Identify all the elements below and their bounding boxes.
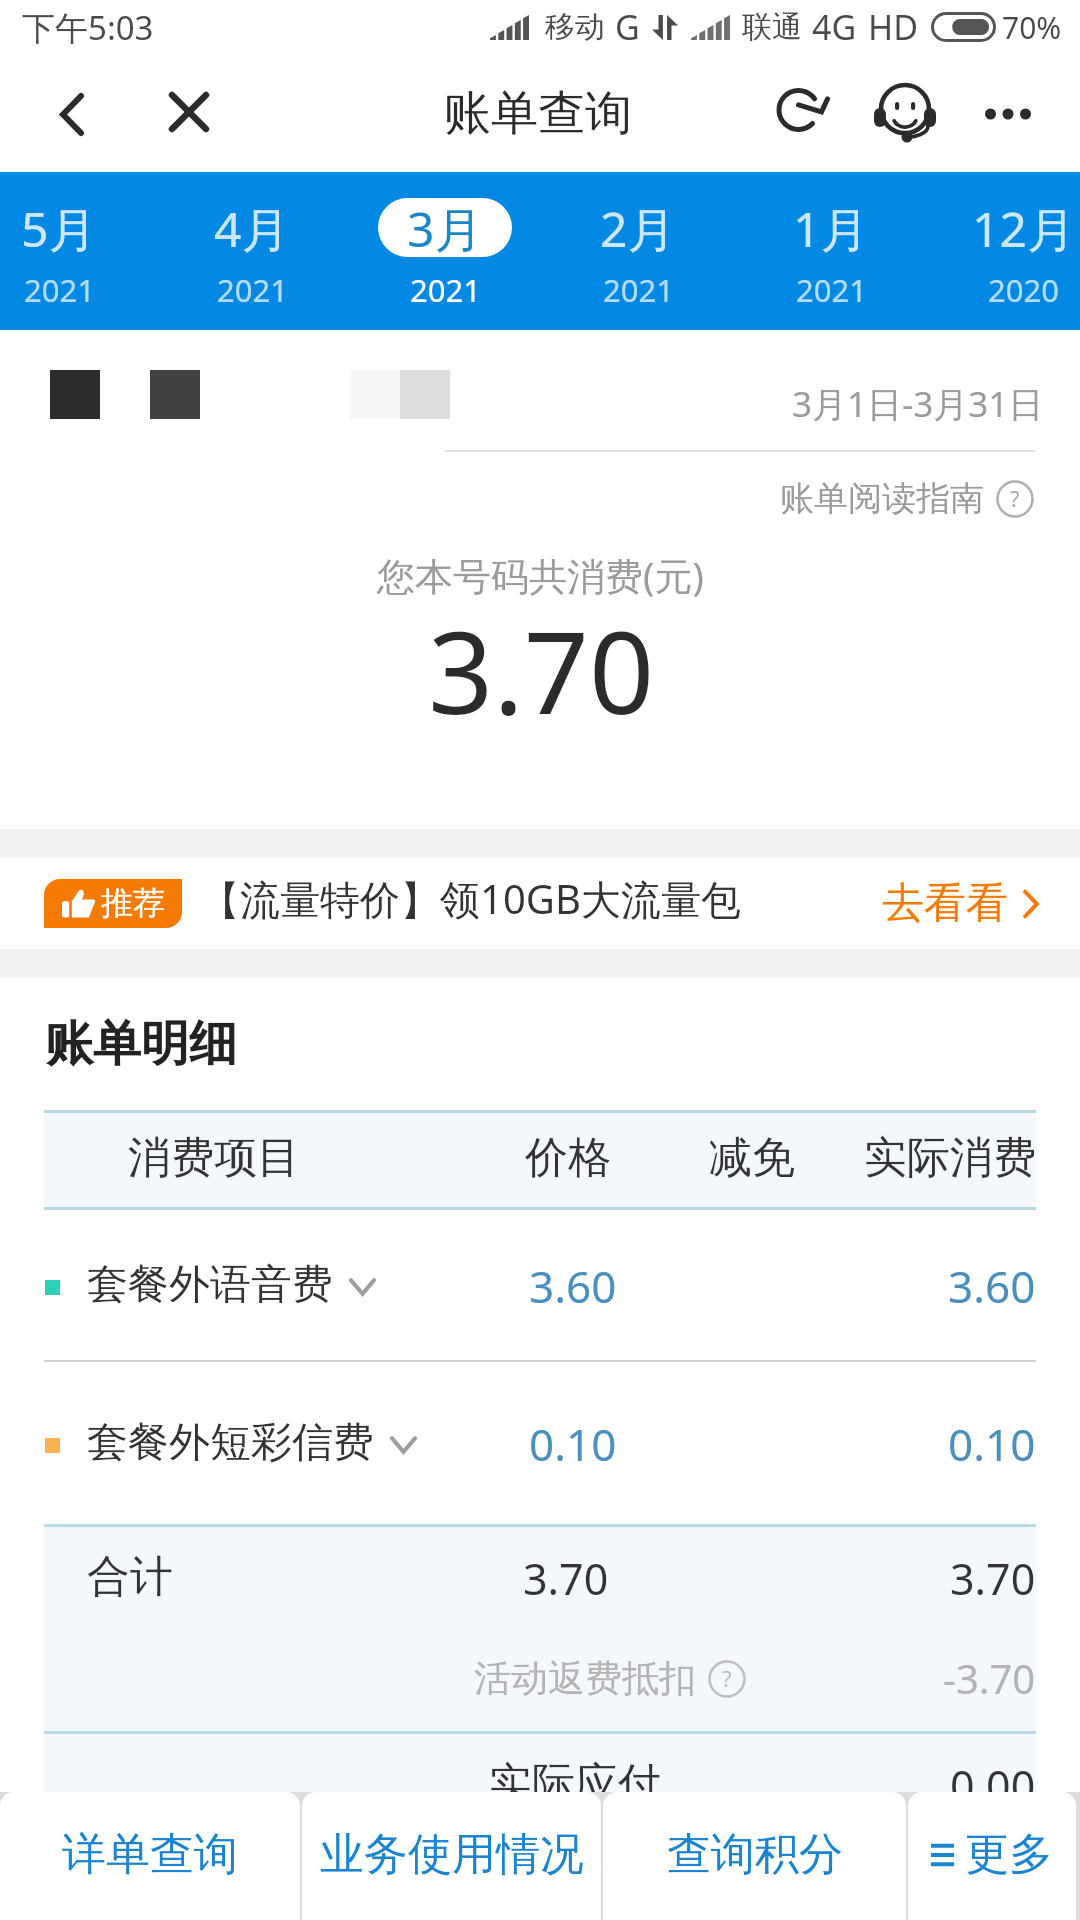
staticText: 更多: [965, 1827, 1053, 1882]
button[interactable]: 1月: [734, 172, 927, 330]
staticText: 【流量特价】领10GB大流量包: [200, 871, 741, 926]
staticText: 业务使用情况: [320, 1827, 584, 1882]
button[interactable]: 详单查询: [0, 1792, 300, 1920]
staticText: ?: [1010, 483, 1020, 513]
button[interactable]: 2月: [541, 172, 734, 330]
staticText: 4月: [214, 196, 290, 255]
button[interactable]: 业务使用情况: [302, 1792, 601, 1920]
staticText: 消费项目: [128, 1131, 300, 1185]
staticText: 2021: [410, 269, 481, 311]
button[interactable]: 推荐: [0, 858, 1080, 949]
button[interactable]: 12月: [927, 172, 1080, 330]
staticText: 详单查询: [62, 1827, 238, 1882]
staticText: 4G: [812, 4, 857, 50]
staticText: 查询积分: [667, 1827, 843, 1882]
staticText: 1月: [793, 196, 869, 255]
staticText: 去看看: [882, 877, 1008, 930]
staticText: 合计: [87, 1550, 173, 1604]
button[interactable]: 4月: [155, 172, 348, 330]
staticText: 价格: [525, 1131, 611, 1185]
button[interactable]: Refresh: [758, 56, 848, 166]
staticText: 3.70: [428, 592, 655, 747]
staticText: 0.10: [529, 1414, 617, 1474]
staticText: 减免: [709, 1131, 795, 1185]
staticText: G: [615, 4, 640, 50]
staticText: 套餐外短彩信费: [87, 1417, 374, 1469]
staticText: 账单阅读指南: [780, 477, 984, 520]
staticText: 账单查询: [444, 84, 632, 143]
staticText: 2020: [988, 269, 1059, 311]
staticText: HD: [868, 4, 919, 50]
staticText: 2021: [217, 269, 288, 311]
button[interactable]: 套餐外短彩信费: [0, 1362, 1080, 1524]
staticText: 联通: [742, 8, 802, 46]
staticText: 3.60: [948, 1256, 1036, 1316]
staticText: 2月: [600, 196, 676, 255]
button[interactable]: Back: [27, 59, 117, 169]
staticText: 您本号码共消费(元): [377, 549, 704, 601]
staticText: 推荐: [101, 883, 165, 923]
staticText: 0.00: [950, 1756, 1036, 1815]
staticText: 12月: [972, 196, 1075, 255]
staticText: 套餐外语音费: [87, 1259, 333, 1311]
button[interactable]: 查询积分: [603, 1792, 906, 1920]
staticText: 2021: [796, 269, 867, 311]
staticText: 3.60: [529, 1256, 617, 1316]
staticText: 移动: [545, 8, 605, 46]
button[interactable]: 5月: [0, 172, 155, 330]
staticText: -3.70: [943, 1651, 1036, 1705]
staticText: 活动返费抵扣: [474, 1655, 696, 1702]
button[interactable]: 3月: [348, 172, 541, 330]
button[interactable]: Close: [144, 57, 234, 167]
staticText: 3月: [407, 198, 483, 255]
staticText: 下午5:03: [22, 5, 154, 50]
button[interactable]: 账单阅读指南: [780, 477, 1034, 520]
staticText: 3.70: [950, 1549, 1036, 1608]
staticText: 实际消费: [864, 1131, 1036, 1185]
staticText: 2021: [603, 269, 674, 311]
staticText: ?: [722, 1663, 732, 1693]
button[interactable]: More options: [963, 59, 1053, 169]
staticText: 70%: [1002, 7, 1062, 48]
staticText: 0.10: [948, 1414, 1036, 1474]
staticText: 2021: [24, 269, 95, 311]
staticText: 3.70: [523, 1549, 609, 1608]
staticText: 5月: [21, 196, 97, 255]
button[interactable]: Customer service: [860, 61, 950, 171]
staticText: 3月1日-3月31日: [792, 380, 1044, 428]
button[interactable]: 更多: [908, 1792, 1076, 1920]
staticText: 实际应付: [489, 1757, 661, 1811]
staticText: 账单明细: [45, 1014, 237, 1074]
button[interactable]: 套餐外语音费: [0, 1210, 1080, 1360]
